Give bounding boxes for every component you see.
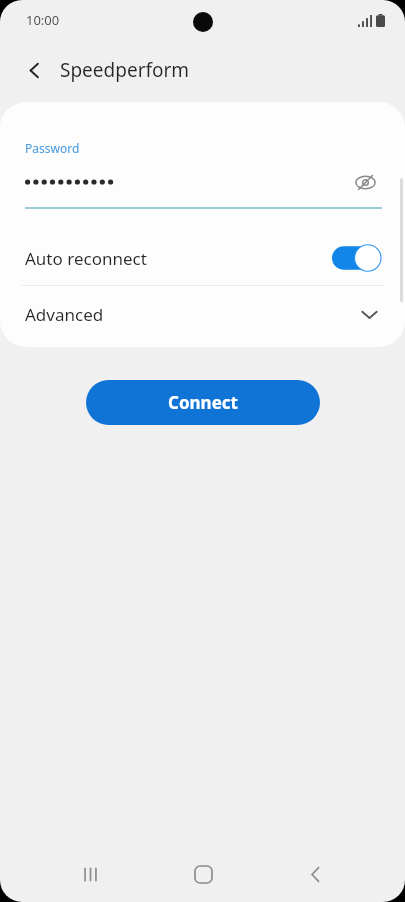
button[interactable]: Back (292, 851, 338, 897)
button[interactable]: Auto reconnect toggle (332, 244, 382, 272)
staticText: Connect (168, 391, 238, 414)
staticText: Password (25, 140, 80, 156)
staticText: 10:00 (26, 11, 60, 29)
staticText: Speedperform (60, 57, 190, 83)
staticText: Auto reconnect (25, 247, 332, 270)
button[interactable]: Show password (348, 165, 382, 199)
button[interactable]: Home (180, 851, 226, 897)
button[interactable]: Auto reconnect (0, 231, 405, 285)
button[interactable]: Connect (86, 380, 320, 425)
button[interactable]: Recent apps (67, 851, 113, 897)
staticText: Advanced (25, 303, 360, 326)
button[interactable]: Password (0, 102, 405, 209)
button[interactable]: Back (16, 52, 52, 88)
button[interactable]: Advanced (0, 286, 405, 343)
